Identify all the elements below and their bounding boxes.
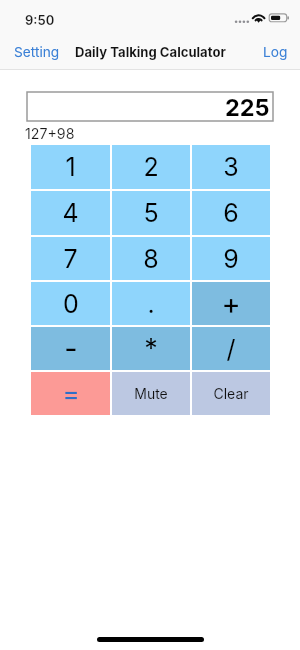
staticText: =: [62, 378, 80, 409]
staticText: Log: [263, 44, 288, 61]
button[interactable]: 6: [192, 191, 270, 235]
button[interactable]: Log: [253, 36, 300, 68]
button[interactable]: .: [112, 282, 190, 325]
staticText: -: [64, 331, 78, 366]
button[interactable]: Setting: [0, 36, 70, 68]
button[interactable]: 3: [192, 145, 270, 189]
staticText: 8: [143, 244, 159, 274]
button[interactable]: =: [31, 372, 110, 415]
button[interactable]: *: [112, 327, 190, 370]
button[interactable]: 8: [112, 237, 190, 280]
button[interactable]: /: [192, 327, 270, 370]
button[interactable]: 1: [31, 145, 110, 189]
staticText: 3: [223, 152, 239, 182]
staticText: 5: [143, 198, 159, 228]
staticText: 0: [63, 289, 79, 319]
staticText: 2: [143, 152, 159, 182]
button[interactable]: 9: [192, 237, 270, 280]
button[interactable]: 0: [31, 282, 110, 325]
button[interactable]: Clear: [192, 372, 270, 415]
button[interactable]: 225: [27, 92, 273, 121]
staticText: /: [226, 334, 236, 364]
staticText: Clear: [213, 385, 249, 402]
button[interactable]: Mute: [112, 372, 190, 415]
staticText: Daily Talking Calculator: [75, 44, 226, 60]
staticText: Mute: [134, 385, 168, 402]
staticText: 6: [223, 198, 239, 228]
staticText: 225: [225, 93, 270, 121]
staticText: 4: [62, 198, 79, 228]
button[interactable]: 7: [31, 237, 110, 280]
staticText: 127+98: [25, 125, 75, 142]
staticText: .: [147, 289, 155, 319]
staticText: 9: [223, 244, 239, 274]
staticText: +: [221, 286, 241, 321]
staticText: 1: [65, 152, 76, 182]
button[interactable]: 4: [31, 191, 110, 235]
staticText: *: [144, 332, 158, 365]
button[interactable]: +: [192, 282, 270, 325]
button[interactable]: 5: [112, 191, 190, 235]
button[interactable]: 2: [112, 145, 190, 189]
button[interactable]: -: [31, 327, 110, 370]
staticText: 7: [63, 244, 78, 274]
other: Home indicator: [97, 637, 204, 642]
staticText: 9:50: [25, 12, 55, 28]
staticText: Setting: [14, 44, 60, 61]
